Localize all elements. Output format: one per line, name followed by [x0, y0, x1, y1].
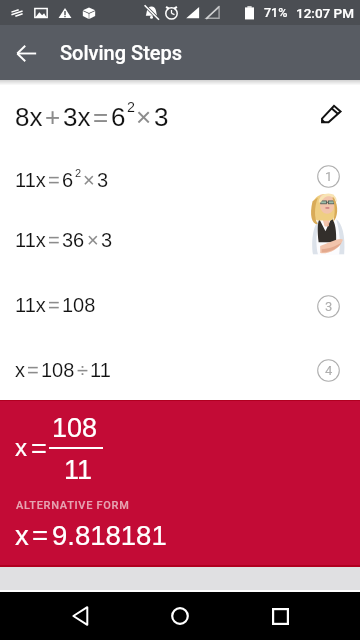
staticText: x — [15, 434, 27, 461]
staticText: 8x — [15, 102, 43, 131]
staticText: = — [27, 359, 39, 381]
staticText: 11x — [15, 169, 46, 191]
staticText: 3x — [63, 102, 91, 131]
button[interactable]: 11x — [15, 169, 109, 191]
staticText: 2 — [127, 99, 135, 115]
button[interactable]: 1 — [317, 165, 340, 188]
staticText: 36 — [62, 229, 85, 251]
staticText: 71% — [264, 5, 288, 20]
staticText: 2 — [75, 167, 82, 179]
button[interactable]: Back — [56, 592, 104, 640]
staticText: 9.818181 — [52, 520, 167, 551]
staticText: 11 — [90, 359, 111, 381]
button[interactable]: Recent apps — [256, 592, 304, 640]
staticText: 6 — [62, 169, 74, 191]
button[interactable]: Back — [0, 27, 52, 79]
staticText: = — [48, 294, 60, 316]
button[interactable]: Home — [156, 592, 204, 640]
staticText: ÷ — [77, 359, 88, 381]
button[interactable]: 4 — [317, 359, 340, 382]
staticText: = — [31, 434, 47, 464]
staticText: 4 — [325, 363, 333, 378]
staticText: 108 — [62, 294, 96, 316]
staticText: = — [93, 102, 109, 131]
staticText: 3 — [101, 229, 113, 251]
staticText: + — [45, 102, 61, 131]
staticText: × — [87, 229, 99, 251]
button[interactable]: x — [14, 412, 68, 442]
staticText: x — [15, 520, 29, 551]
staticText: 11x — [15, 294, 46, 316]
staticText: 12:07 PM — [296, 5, 355, 21]
staticText: 3 — [97, 169, 109, 191]
staticText: 108 — [41, 359, 75, 381]
staticText: 108 — [52, 413, 98, 443]
staticText: × — [136, 102, 152, 131]
staticText: × — [83, 169, 95, 191]
staticText: 6 — [111, 102, 126, 131]
staticText: x — [15, 359, 25, 381]
staticText: = — [48, 169, 60, 191]
button[interactable]: 3 — [317, 295, 340, 318]
staticText: Solving Steps — [60, 41, 183, 64]
button[interactable]: 8x — [15, 102, 169, 131]
staticText: = — [48, 229, 60, 251]
staticText: 3 — [325, 299, 333, 314]
staticText: 11x — [15, 229, 46, 251]
staticText: 1 — [325, 169, 333, 184]
button[interactable]: x — [15, 359, 111, 381]
button[interactable]: x — [15, 520, 167, 551]
staticText: = — [32, 520, 49, 551]
staticText: 3 — [154, 102, 169, 131]
button[interactable]: 11x — [15, 229, 113, 251]
staticText: ALTERNATIVE FORM — [16, 499, 130, 512]
button[interactable]: 11x — [15, 294, 96, 316]
staticText: 11 — [64, 455, 93, 485]
button[interactable]: Edit equation — [318, 100, 344, 126]
